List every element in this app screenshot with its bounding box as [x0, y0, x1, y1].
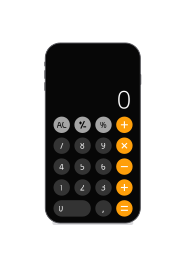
button[interactable]: 1: [53, 179, 70, 196]
button[interactable]: Subtract: [116, 158, 133, 175]
staticText: 1: [59, 182, 64, 193]
staticText: 3: [101, 182, 106, 193]
button[interactable]: Multiply: [116, 137, 133, 154]
staticText: 6: [101, 161, 106, 172]
button[interactable]: 5: [74, 158, 91, 175]
button[interactable]: 3: [95, 179, 112, 196]
staticText: 0: [117, 82, 131, 116]
button[interactable]: Toggle sign: [74, 117, 91, 133]
staticText: 7: [59, 140, 64, 151]
button[interactable]: 0: [53, 200, 91, 217]
staticText: AC: [57, 119, 67, 130]
button[interactable]: 6: [95, 158, 112, 175]
button[interactable]: 9: [95, 137, 112, 154]
staticText: 8: [80, 140, 85, 151]
button[interactable]: ,: [95, 200, 112, 217]
button[interactable]: 2: [74, 179, 91, 196]
button[interactable]: 8: [74, 137, 91, 154]
button[interactable]: Add: [116, 179, 133, 196]
button[interactable]: 4: [53, 158, 70, 175]
button[interactable]: AC: [53, 117, 70, 133]
button[interactable]: Divide: [116, 117, 133, 133]
staticText: 5: [80, 161, 85, 172]
staticText: 0: [58, 203, 63, 214]
staticText: ,: [102, 202, 105, 215]
button[interactable]: %: [95, 117, 112, 133]
staticText: 4: [59, 161, 64, 172]
button[interactable]: 7: [53, 137, 70, 154]
staticText: 9: [101, 140, 106, 151]
staticText: %: [100, 119, 107, 130]
staticText: 2: [80, 182, 85, 193]
button[interactable]: Equals: [116, 200, 133, 217]
